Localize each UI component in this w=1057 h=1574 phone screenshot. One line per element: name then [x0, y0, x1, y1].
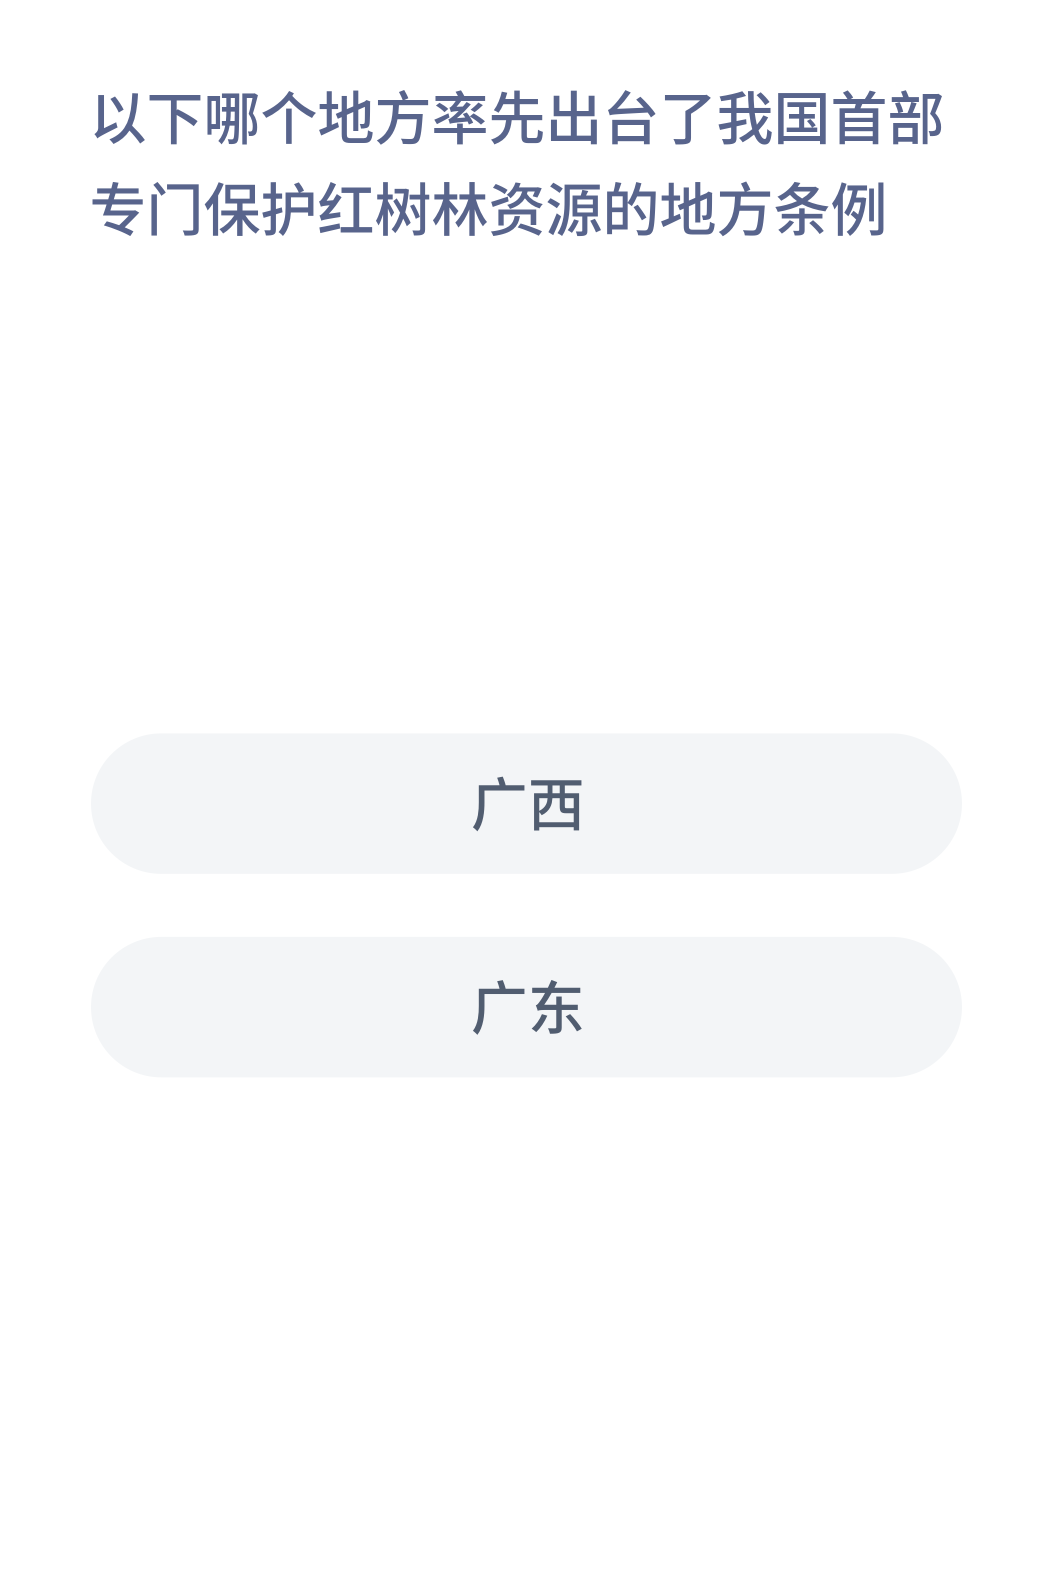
button[interactable]: 广东 — [91, 937, 962, 1077]
staticText: 以下哪个地方率先出台了我国首部专门保护红树林资源的地方条例 — [90, 73, 945, 247]
staticText: 广东 — [471, 963, 585, 1045]
button[interactable]: 广西 — [91, 733, 962, 874]
staticText: 广西 — [471, 760, 585, 842]
